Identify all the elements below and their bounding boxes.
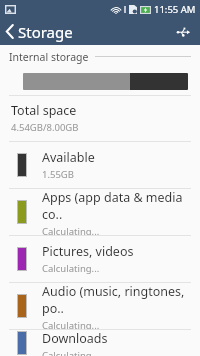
staticText: 4.54GB/8.00GB [11,121,79,134]
staticText: Calculating... [42,225,100,235]
staticText: Total space [11,102,77,119]
button[interactable]: Navigate up, Storage [0,18,81,45]
button[interactable]: USB connection [166,18,200,45]
staticText: Available [42,149,95,166]
button[interactable]: Available [0,142,200,188]
button[interactable]: Downloads [0,330,200,356]
staticText: Storage [18,22,73,42]
button[interactable]: Pictures, videos [0,236,200,282]
staticText: Downloads [42,330,108,347]
staticText: 11:55 AM [154,3,196,16]
staticText: Calculating... [42,262,100,275]
staticText: Calculating... [42,319,100,329]
staticText: Audio (music, ringtones, po.. [42,283,200,317]
button[interactable]: Total space [0,96,200,141]
button[interactable]: Apps (app data & media co.. [0,189,200,235]
staticText: 1.55GB [42,168,74,181]
staticText: Internal storage [9,50,89,64]
staticText: Pictures, videos [42,243,134,260]
staticText: Calculating... [42,349,100,356]
staticText: Apps (app data & media co.. [42,189,200,223]
button[interactable]: Audio (music, ringtones, po.. [0,283,200,329]
